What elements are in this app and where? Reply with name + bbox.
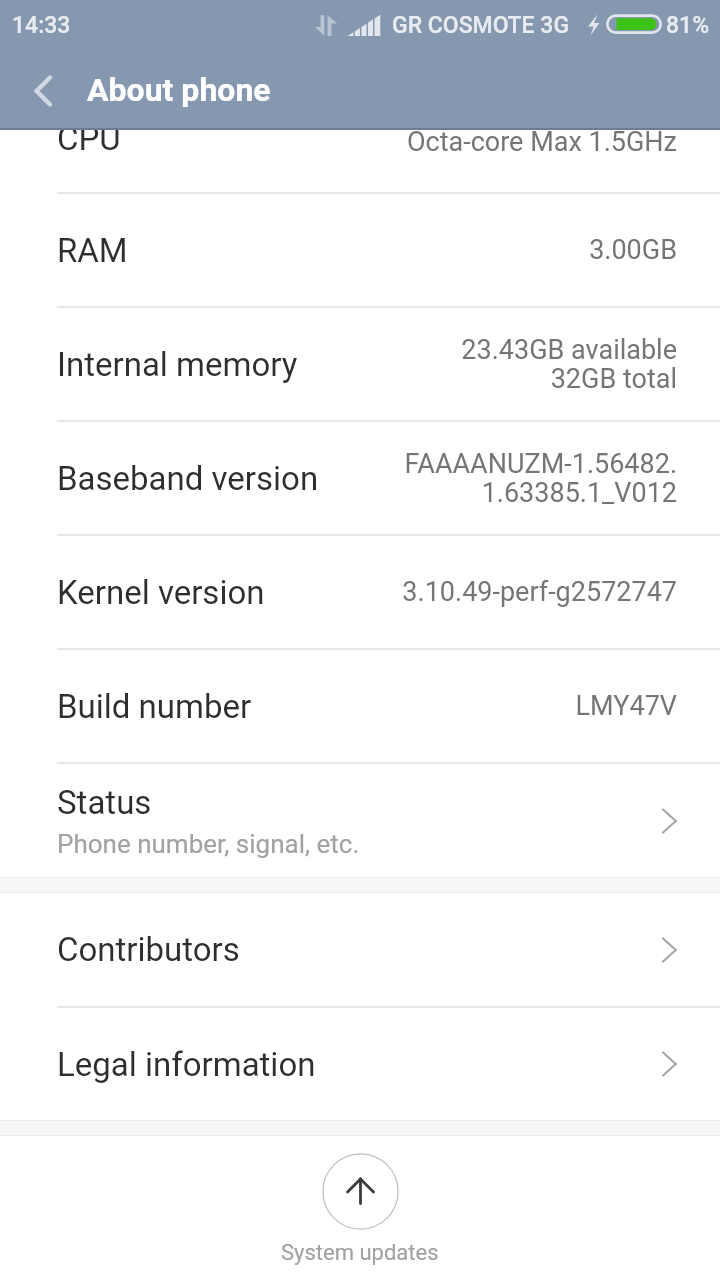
button[interactable]: Legal information (0, 1008, 720, 1120)
staticText: Octa-core Max 1.5GHz (129, 130, 677, 158)
staticText: 14:33 (12, 12, 71, 39)
staticText: 3.00GB (136, 234, 677, 266)
button[interactable]: Back (0, 53, 87, 130)
button[interactable]: Build number (0, 650, 720, 762)
button[interactable]: RAM (0, 194, 720, 306)
staticText: Phone number, signal, etc. (57, 829, 360, 859)
staticText: Baseband version (57, 459, 319, 498)
button[interactable]: System updates (0, 1136, 720, 1266)
staticText: CPU (57, 130, 121, 158)
button[interactable]: Contributors (0, 893, 720, 1006)
staticText: Build number (57, 687, 252, 726)
staticText: LMY47V (260, 690, 677, 722)
staticText: 81% (666, 12, 710, 39)
button[interactable]: Internal memory (0, 308, 720, 420)
staticText: 3.10.49-perf-g2572747 (273, 576, 677, 608)
button[interactable]: Baseband version (0, 422, 720, 534)
staticText: Kernel version (57, 573, 265, 612)
staticText: Contributors (57, 930, 240, 969)
staticText: Legal information (57, 1045, 316, 1084)
button[interactable]: CPU (0, 130, 720, 192)
button[interactable]: Status (0, 764, 720, 877)
staticText: Status (57, 783, 152, 822)
staticText: GR COSMOTE 3G (392, 12, 570, 39)
staticText: RAM (57, 231, 128, 270)
staticText: System updates (281, 1240, 439, 1266)
staticText: FAAAANUZM-1.56482. 1.63385.1_V012 (327, 448, 677, 509)
button[interactable]: Kernel version (0, 536, 720, 648)
staticText: About phone (87, 71, 271, 109)
staticText: Internal memory (57, 345, 298, 384)
staticText: 23.43GB available 32GB total (306, 334, 677, 395)
